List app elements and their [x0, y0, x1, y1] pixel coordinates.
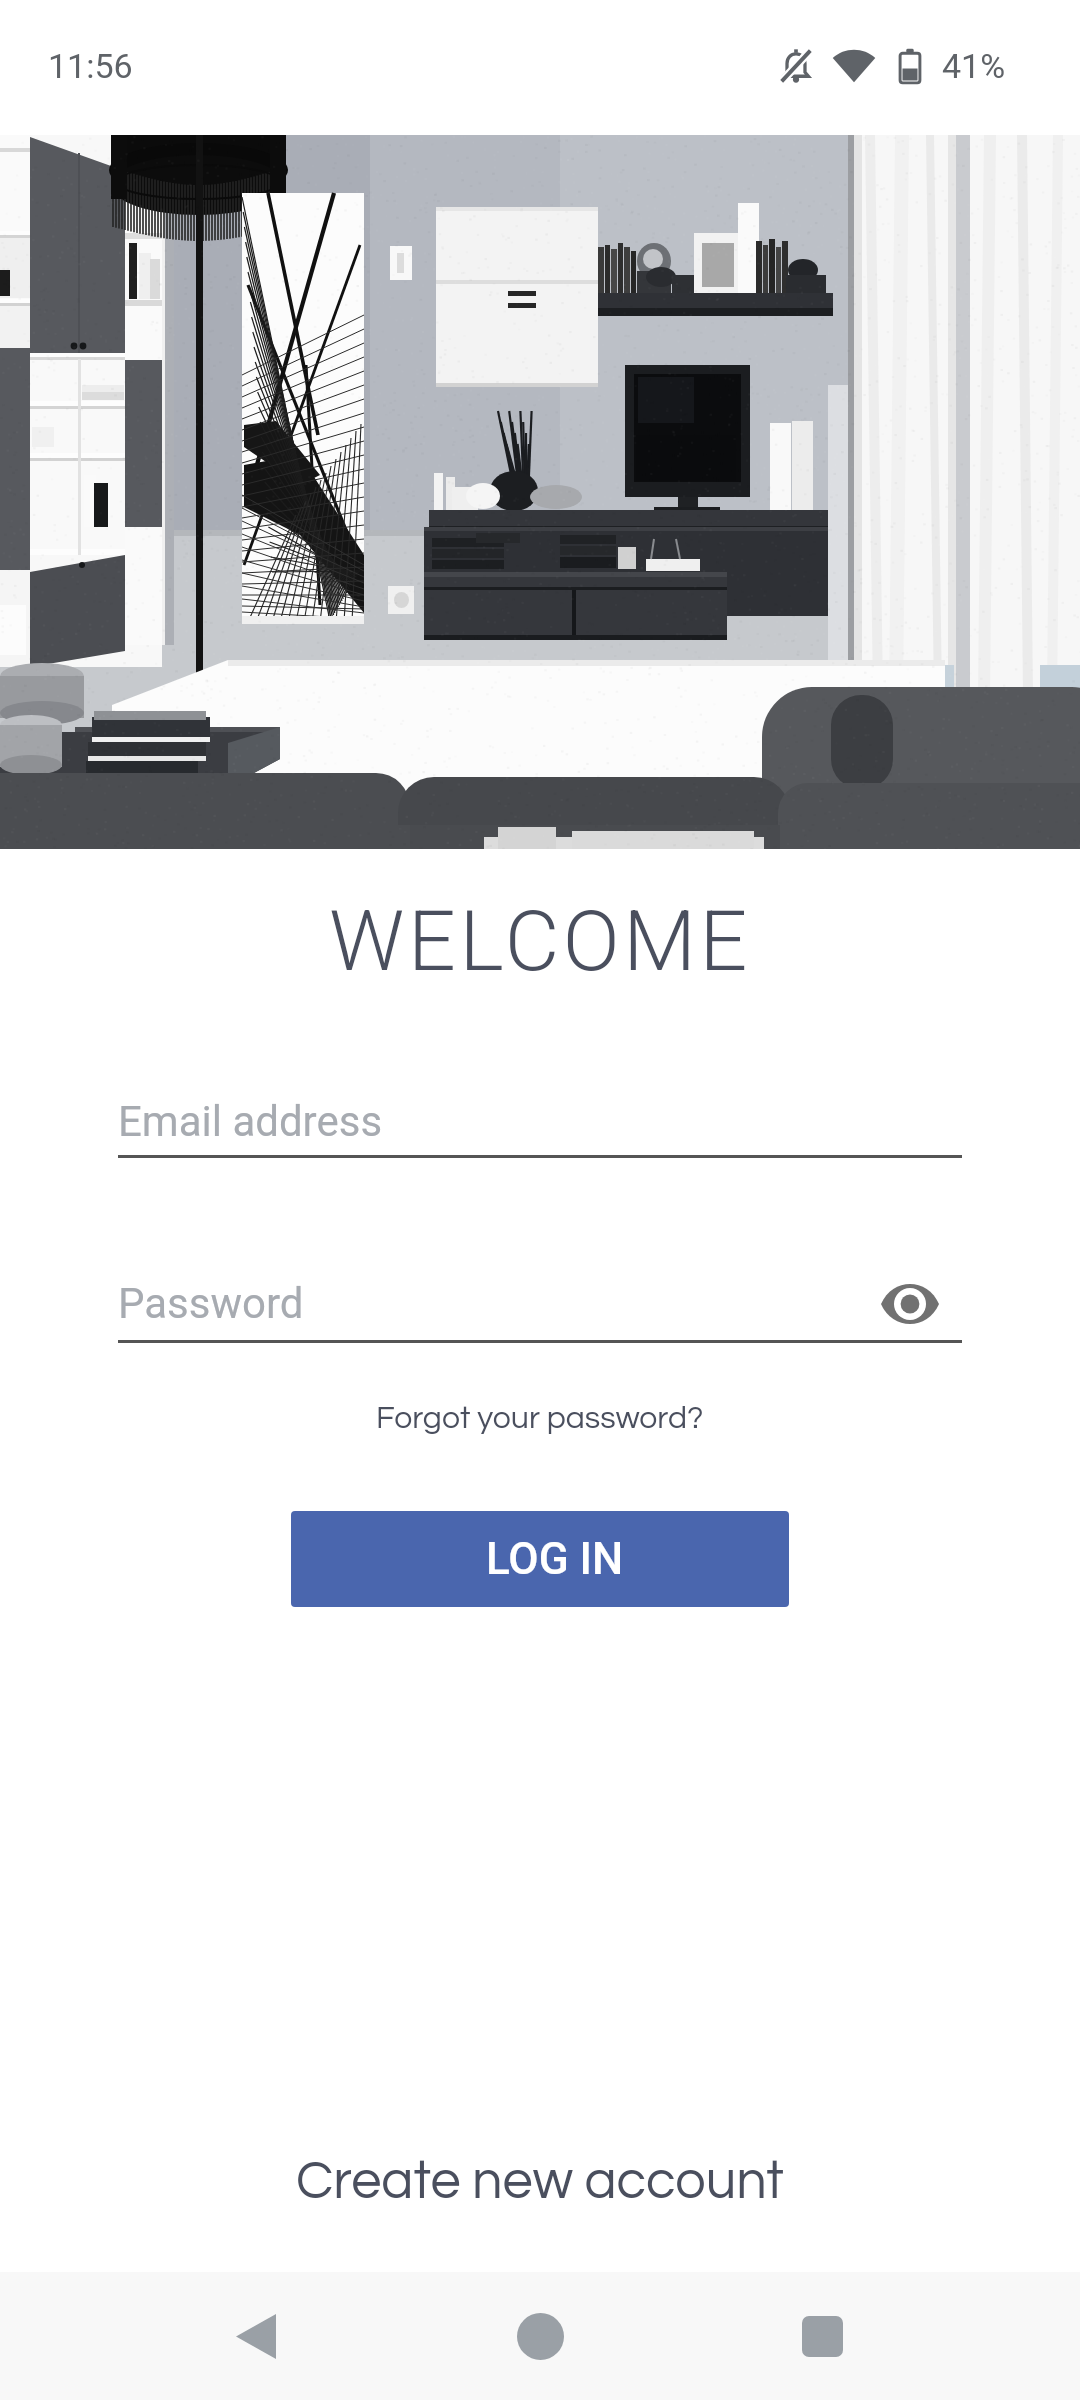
staticText: 41% — [942, 46, 1006, 86]
button[interactable]: Email address — [118, 1086, 962, 1158]
button[interactable]: Show password — [874, 1268, 946, 1340]
button[interactable]: Recent apps — [778, 2292, 866, 2380]
button[interactable]: Create new account — [276, 2144, 804, 2220]
staticText: Forgot your password? — [376, 1402, 704, 1435]
button[interactable]: Home — [496, 2292, 584, 2380]
staticText: Email address — [118, 1097, 383, 1146]
staticText: WELCOME — [0, 892, 1080, 990]
button[interactable]: LOG IN — [291, 1511, 789, 1607]
button[interactable]: Back — [212, 2292, 300, 2380]
staticText: LOG IN — [486, 1533, 624, 1585]
staticText: Password — [118, 1279, 304, 1328]
staticText: Create new account — [296, 2154, 784, 2210]
staticText: 11:56 — [48, 46, 133, 86]
button[interactable]: Forgot your password? — [358, 1392, 722, 1445]
button[interactable]: Password — [118, 1271, 962, 1343]
